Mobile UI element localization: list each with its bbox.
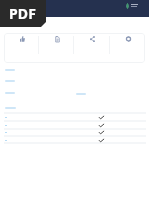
button[interactable]: Row 4 [4, 138, 146, 143]
button[interactable]: Share [74, 33, 109, 63]
button[interactable]: Like [4, 33, 38, 63]
button[interactable]: Brand logo [126, 3, 138, 9]
button[interactable]: Row 3 [4, 130, 146, 135]
button[interactable]: Settings [110, 33, 145, 63]
button[interactable]: Document [39, 33, 73, 63]
button[interactable]: PDF [0, 0, 46, 27]
button[interactable]: Row 1 [4, 115, 146, 120]
staticText: PDF [9, 4, 36, 23]
button[interactable]: Row 2 [4, 123, 146, 128]
